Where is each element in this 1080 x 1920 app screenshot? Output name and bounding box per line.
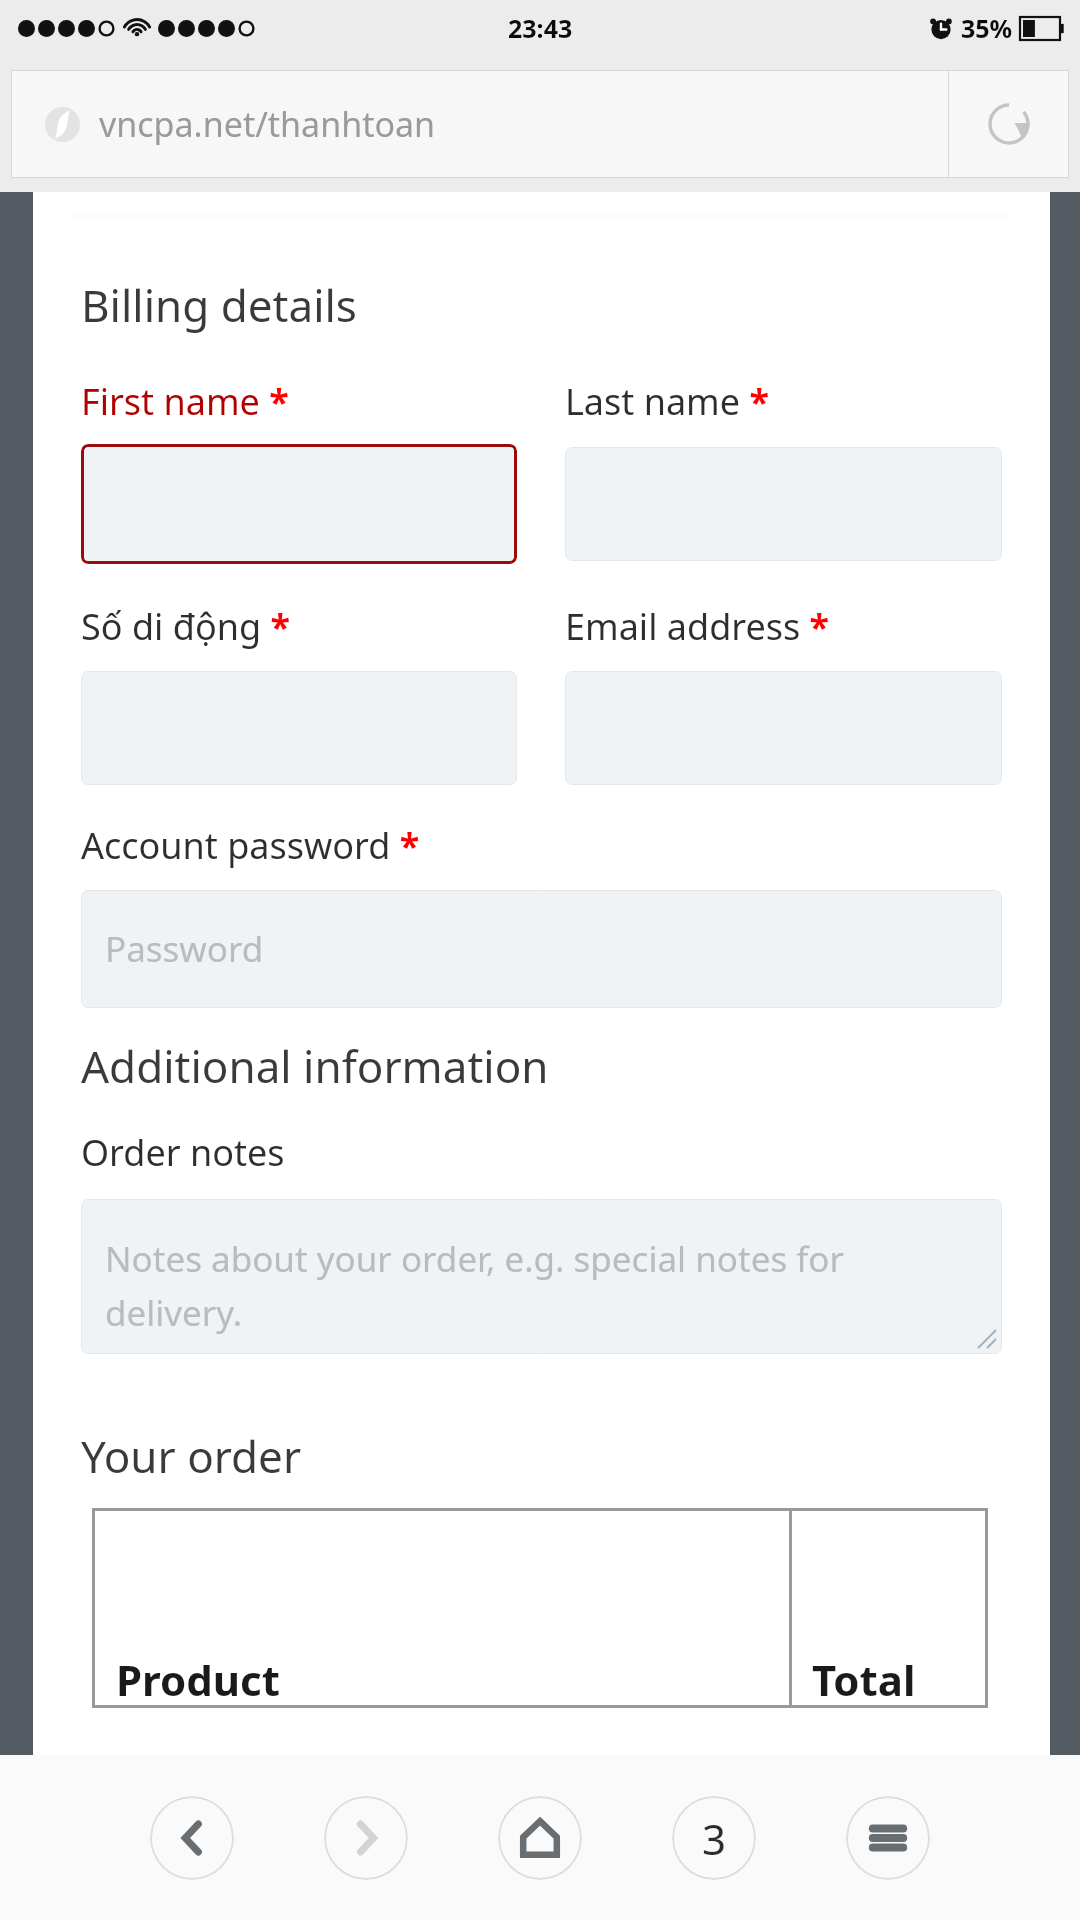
staticText: Billing details [81,275,357,335]
staticText: Additional information [81,1036,549,1096]
staticText: Order notes [81,1128,285,1177]
button[interactable]: Forward [324,1796,408,1880]
button[interactable]: vncpa.net/thanhtoan [11,70,948,178]
staticText: Product [116,1651,281,1708]
staticText: 23:43 [508,11,573,45]
staticText: Notes about your order, e.g. special not… [105,1235,982,1337]
staticText: 35% [961,11,1013,45]
button[interactable] [81,444,517,564]
button[interactable]: Reload [949,70,1069,178]
staticText: Password [105,925,264,973]
staticText: Account password * [81,821,420,870]
staticText: vncpa.net/thanhtoan [99,101,436,147]
staticText: First name * [81,377,289,426]
button[interactable]: Notes about your order, e.g. special not… [81,1199,1002,1354]
staticText: Your order [81,1426,302,1486]
button[interactable]: Back [150,1796,234,1880]
staticText: Last name * [565,377,769,426]
button[interactable]: Password [81,890,1002,1008]
button[interactable]: Tabs [672,1796,756,1880]
staticText: Total [812,1651,916,1708]
button[interactable]: Home [498,1796,582,1880]
button[interactable]: Menu [846,1796,930,1880]
staticText: Email address * [565,602,830,651]
staticText: 3 [702,1810,727,1867]
staticText: Số di động * [81,602,290,651]
